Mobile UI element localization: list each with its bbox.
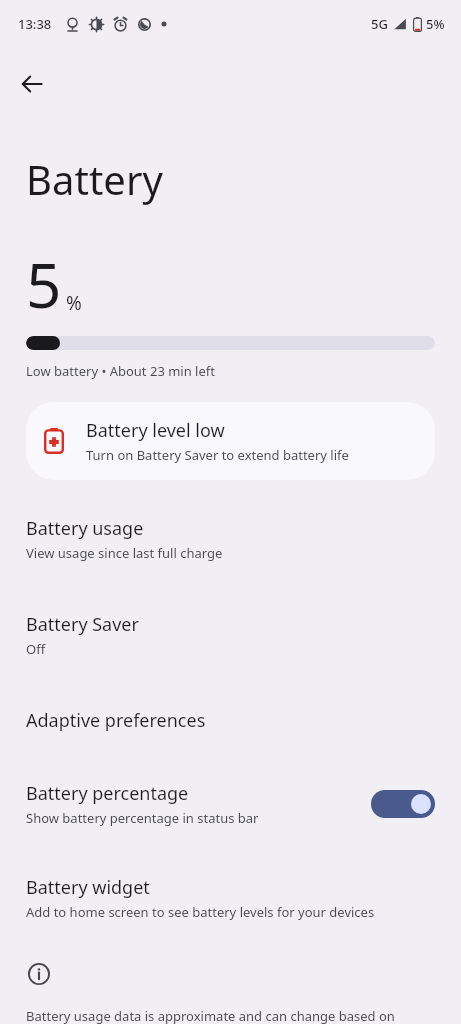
staticText: Battery usage data is approximate and ca… xyxy=(26,1007,435,1024)
staticText: Battery widget xyxy=(26,875,150,900)
staticText: Battery usage xyxy=(26,516,144,541)
staticText: Battery Saver xyxy=(26,612,139,637)
button[interactable]: Battery Saver xyxy=(0,598,461,672)
button[interactable]: Battery percentage xyxy=(0,767,461,841)
staticText: Off xyxy=(26,640,46,658)
staticText: Battery level low xyxy=(86,418,225,443)
button[interactable]: Battery widget xyxy=(0,861,461,935)
staticText: Turn on Battery Saver to extend battery … xyxy=(86,446,349,464)
button[interactable]: Battery percentage toggle xyxy=(371,790,435,818)
staticText: 5% xyxy=(426,15,445,33)
staticText: 13:38 xyxy=(18,15,52,33)
staticText: Low battery • About 23 min left xyxy=(26,362,215,380)
staticText: 5 xyxy=(26,242,62,326)
button[interactable]: Back xyxy=(12,64,52,104)
staticText: Show battery percentage in status bar xyxy=(26,809,259,827)
staticText: Battery xyxy=(26,152,163,206)
staticText: 5G xyxy=(371,15,388,33)
staticText: Adaptive preferences xyxy=(26,708,206,733)
button[interactable]: Adaptive preferences xyxy=(0,694,461,747)
staticText: Add to home screen to see battery levels… xyxy=(26,903,375,921)
staticText: % xyxy=(66,290,82,316)
staticText: Battery percentage xyxy=(26,781,189,806)
staticText: View usage since last full charge xyxy=(26,544,223,562)
button[interactable]: Battery level low xyxy=(26,402,435,480)
button[interactable]: Battery usage xyxy=(0,502,461,576)
